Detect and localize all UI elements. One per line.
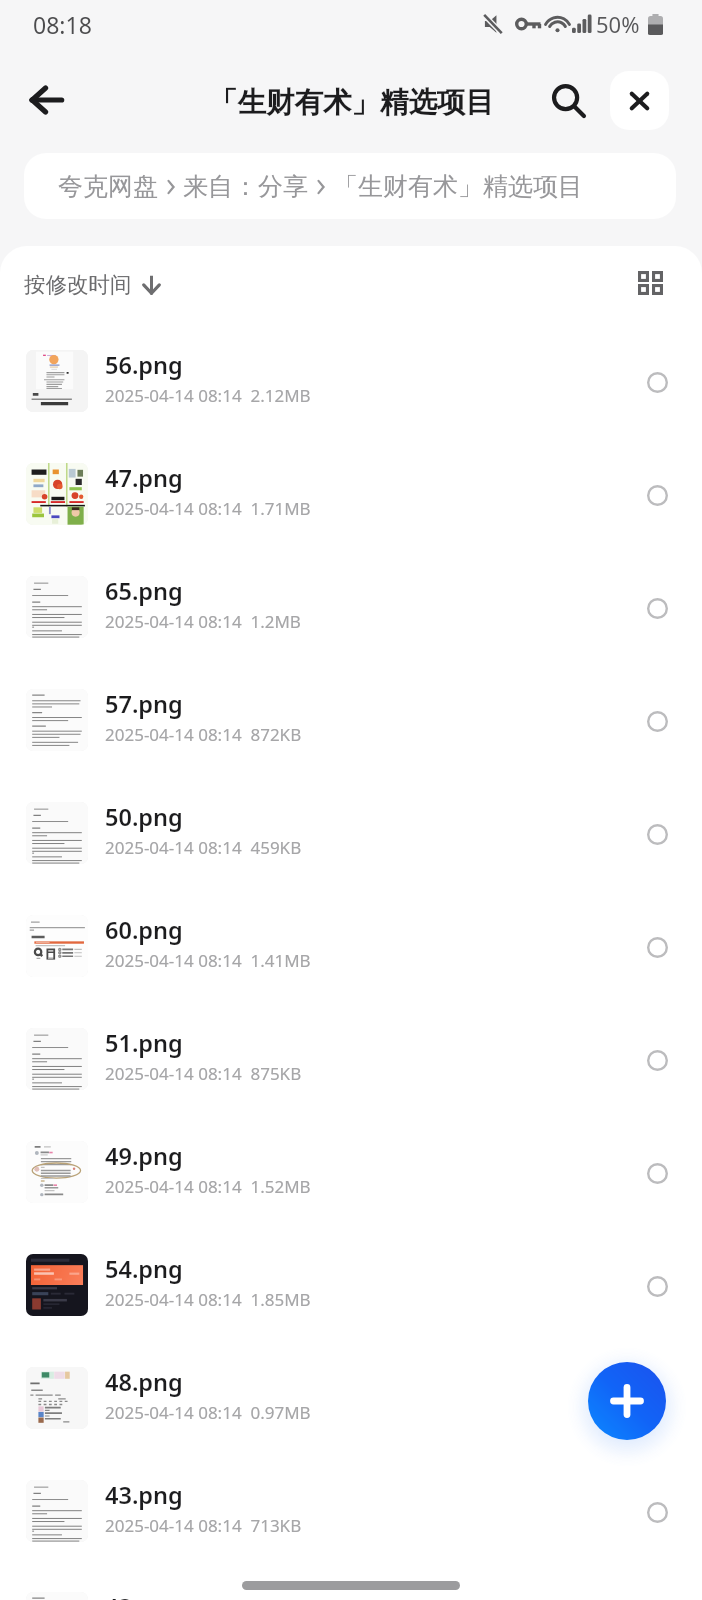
button[interactable]: 57.png [0,660,702,773]
staticText: 2025-04-14 08:14 1.2MB [105,610,301,633]
staticText: 「生财有术」精选项目 [209,85,494,121]
button[interactable]: Close [610,71,669,130]
button[interactable]: 47.png [0,434,702,547]
staticText: 49.png [105,1140,183,1172]
staticText: 65.png [105,575,183,607]
staticText: 夸克网盘 [58,171,158,202]
staticText: 2025-04-14 08:14 0.97MB [105,1401,311,1424]
button[interactable]: Select 50.png [612,773,702,886]
button[interactable]: Select 43.png [612,1451,702,1564]
staticText: 56.png [105,349,183,381]
staticText: 来自：分享 [183,171,308,202]
button[interactable]: Select 57.png [612,660,702,773]
staticText: 「生财有术」精选项目 [333,171,583,202]
staticText: 51.png [105,1027,183,1059]
staticText: 按修改时间 [24,271,132,298]
button[interactable]: 夸克网盘 [24,153,676,219]
button[interactable]: Select 51.png [612,999,702,1112]
button[interactable]: Select 56.png [612,321,702,434]
button[interactable]: 56.png [0,321,702,434]
staticText: 43.png [105,1591,183,1600]
staticText: 57.png [105,688,183,720]
staticText: 08:18 [33,9,92,40]
button[interactable]: 60.png [0,886,702,999]
button[interactable]: 54.png [0,1225,702,1338]
button[interactable]: 51.png [0,999,702,1112]
button[interactable]: Select 65.png [612,547,702,660]
staticText: 60.png [105,914,183,946]
button[interactable]: Select 54.png [612,1225,702,1338]
staticText: 2025-04-14 08:14 1.52MB [105,1175,311,1198]
staticText: 2025-04-14 08:14 2.12MB [105,384,311,407]
staticText: 2025-04-14 08:14 1.41MB [105,949,311,972]
button[interactable]: 48.png [0,1338,702,1451]
staticText: 2025-04-14 08:14 875KB [105,1062,302,1085]
staticText: 54.png [105,1253,183,1285]
staticText: 47.png [105,462,183,494]
button[interactable]: 50.png [0,773,702,886]
staticText: 48.png [105,1366,183,1398]
button[interactable]: Back [14,68,78,132]
button[interactable]: Select 60.png [612,886,702,999]
button[interactable]: Select 48.png [612,1338,702,1451]
button[interactable]: Select 49.png [612,1112,702,1225]
staticText: 2025-04-14 08:14 1.85MB [105,1288,311,1311]
staticText: 50% [596,9,640,39]
button[interactable]: 49.png [0,1112,702,1225]
button[interactable]: Grid view [624,257,676,309]
button[interactable]: 按修改时间 [24,271,160,298]
button[interactable]: Add [588,1362,666,1440]
staticText: 2025-04-14 08:14 459KB [105,836,302,859]
staticText: 2025-04-14 08:14 1.71MB [105,497,311,520]
staticText: 2025-04-14 08:14 713KB [105,1514,302,1537]
staticText: 43.png [105,1479,183,1511]
button[interactable]: Search [537,69,601,133]
button[interactable]: 43.png [0,1451,702,1564]
staticText: 2025-04-14 08:14 872KB [105,723,302,746]
button[interactable]: 65.png [0,547,702,660]
staticText: 50.png [105,801,183,833]
button[interactable]: 43.png [0,1564,702,1600]
button[interactable]: Select 47.png [612,434,702,547]
